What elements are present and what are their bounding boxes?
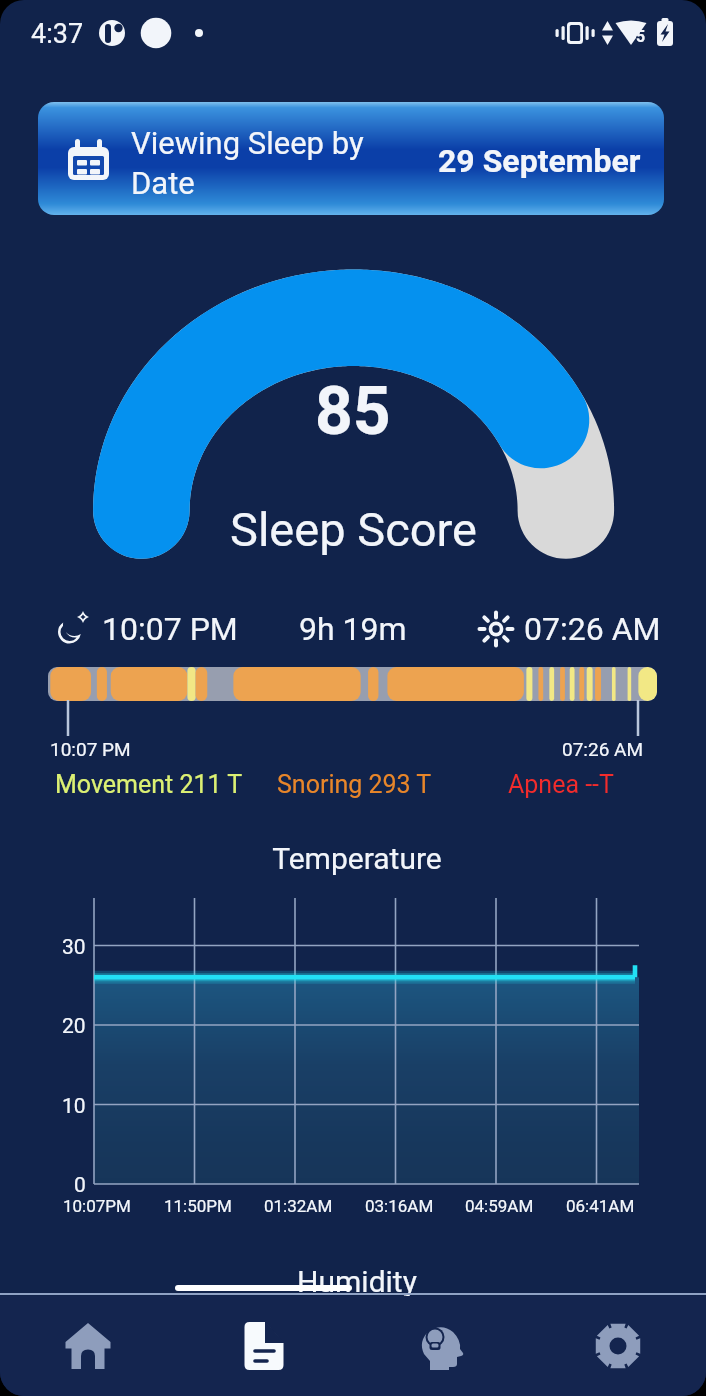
staticText: Movement 211 T [55,770,243,799]
staticText: 85 [315,373,391,450]
staticText: 30 [62,935,86,960]
staticText: Temperature [4,841,706,876]
staticText: Sleep Score [230,502,477,557]
staticText: Humidity [4,1264,706,1299]
staticText: 04:59AM [465,1196,534,1216]
staticText: Apnea --T [508,770,614,799]
staticText: 01:32AM [264,1196,333,1216]
staticText: 10:07PM [63,1196,131,1216]
staticText: 10:07 PM [102,610,238,648]
staticText: 0 [74,1173,86,1198]
staticText: 11:50PM [164,1196,232,1216]
staticText: Viewing Sleep by Date [131,125,376,201]
staticText: 07:26 AM [524,610,661,648]
button[interactable]: Reports [176,1296,352,1396]
button[interactable]: Viewing Sleep by Date [38,102,664,215]
staticText: 03:16AM [365,1196,434,1216]
button[interactable]: Settings [529,1296,706,1396]
staticText: 10 [62,1094,86,1119]
staticText: 10:07 PM [50,738,131,760]
staticText: 4:37 [31,18,84,50]
staticText: 29 September [438,142,641,180]
staticText: Snoring 293 T [277,770,432,799]
staticText: 07:26 AM [562,738,644,760]
staticText: 20 [62,1014,86,1039]
button[interactable]: Insights [352,1296,529,1396]
staticText: 5 [636,27,646,46]
staticText: 9h 19m [299,610,407,648]
button[interactable]: Home [0,1296,176,1396]
staticText: 06:41AM [566,1196,635,1216]
